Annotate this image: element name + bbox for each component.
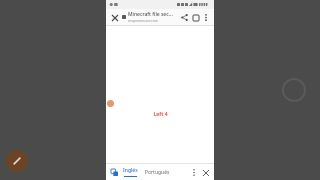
button[interactable]: Close: [109, 12, 120, 23]
staticText: Left 4: [153, 111, 168, 118]
button[interactable]: Portugués: [144, 167, 171, 178]
staticText: Inglés: [123, 167, 138, 174]
button[interactable]: Google Translate: [109, 167, 119, 177]
staticText: Portugués: [145, 169, 170, 176]
button[interactable]: Close translate bar: [200, 167, 211, 178]
button[interactable]: Translate options: [189, 167, 199, 177]
button[interactable]: Edit: [6, 150, 28, 172]
staticText: mspoweruser.com: [128, 18, 159, 23]
staticText: Minecraft file sec...: [128, 11, 173, 18]
button[interactable]: Inglés: [122, 167, 139, 177]
button[interactable]: Add to home screen: [190, 12, 201, 23]
button[interactable]: Share: [179, 12, 190, 23]
button[interactable]: More options: [201, 12, 211, 22]
